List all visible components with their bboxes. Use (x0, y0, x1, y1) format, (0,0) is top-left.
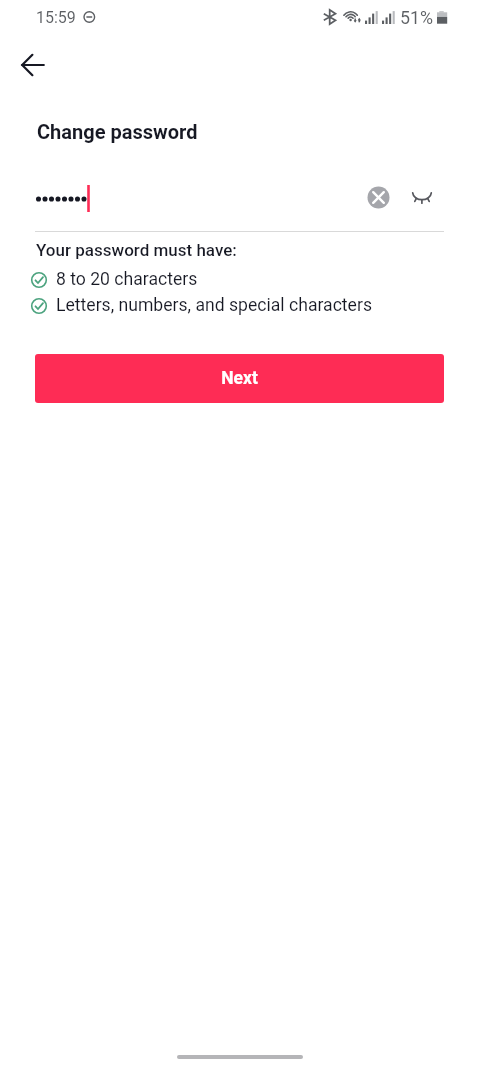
staticText: Next (221, 368, 258, 389)
staticText: 51% (400, 7, 434, 28)
staticText: 15:59 (36, 8, 76, 27)
staticText: Letters, numbers, and special characters (56, 295, 372, 316)
staticText: 8 to 20 characters (56, 269, 198, 290)
staticText: Your password must have: (36, 240, 237, 260)
button[interactable]: Password field (35, 176, 355, 222)
staticText: Change password (37, 120, 198, 143)
button[interactable]: Clear text (358, 177, 399, 218)
button[interactable]: Show password (402, 177, 442, 217)
button[interactable]: Next (35, 354, 444, 403)
button[interactable]: Back (10, 44, 52, 86)
